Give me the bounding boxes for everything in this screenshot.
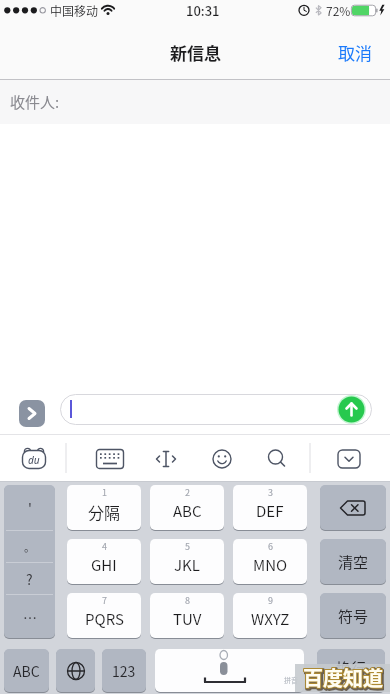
staticText: '	[28, 498, 32, 518]
staticText: 百度知道	[303, 663, 383, 691]
button[interactable]	[67, 485, 141, 530]
button[interactable]	[336, 447, 362, 471]
staticText: 123	[112, 661, 136, 681]
button[interactable]	[317, 649, 385, 692]
button[interactable]	[95, 446, 125, 472]
button[interactable]	[320, 539, 386, 584]
staticText: WXYZ	[251, 608, 290, 630]
staticText: 拼音	[284, 675, 298, 685]
button[interactable]	[233, 485, 307, 530]
staticText: 10:31	[186, 1, 220, 20]
staticText: 6	[268, 540, 273, 552]
staticText: 中国移动	[50, 2, 98, 19]
button[interactable]	[4, 485, 55, 638]
staticText: ABC	[173, 500, 202, 522]
staticText: 符号	[338, 605, 369, 627]
staticText: 收件人:	[10, 91, 60, 113]
button[interactable]	[320, 593, 386, 638]
button[interactable]	[150, 593, 224, 638]
button[interactable]	[0, 80, 390, 124]
button[interactable]	[152, 446, 180, 472]
button[interactable]	[337, 395, 366, 424]
staticText: 4	[102, 540, 107, 552]
button[interactable]	[67, 593, 141, 638]
staticText: 9	[268, 594, 273, 606]
staticText: 2	[185, 486, 190, 498]
staticText: 取消	[338, 40, 372, 65]
staticText: 百度知道	[304, 664, 384, 692]
staticText: DEF	[256, 500, 284, 522]
staticText: 。	[24, 539, 35, 555]
staticText: GHI	[91, 554, 117, 576]
button[interactable]	[19, 400, 45, 427]
button[interactable]	[263, 446, 291, 472]
staticText: ABC	[13, 661, 40, 681]
staticText: 新信息	[170, 40, 221, 65]
button[interactable]	[56, 649, 95, 692]
staticText: 分隔	[88, 500, 121, 523]
button[interactable]	[102, 649, 146, 692]
staticText: 5	[185, 540, 190, 552]
staticText: MNO	[253, 554, 288, 576]
staticText: du	[28, 453, 40, 467]
staticText: 换行	[336, 657, 367, 679]
staticText: 8	[185, 594, 190, 606]
button[interactable]	[155, 649, 304, 692]
button[interactable]	[150, 485, 224, 530]
staticText: 清空	[338, 551, 369, 573]
staticText: 7	[102, 594, 107, 606]
staticText: 3	[268, 486, 273, 498]
staticText: …	[23, 607, 37, 627]
button[interactable]: 取消	[330, 38, 380, 66]
button[interactable]	[320, 485, 386, 530]
staticText: JKL	[174, 554, 200, 576]
staticText: 1	[102, 486, 107, 498]
button[interactable]	[4, 649, 49, 692]
staticText: ?	[26, 569, 33, 589]
button[interactable]	[150, 539, 224, 584]
staticText: PQRS	[85, 608, 124, 630]
staticText: 72%	[326, 2, 351, 19]
button[interactable]	[208, 446, 236, 472]
button[interactable]	[60, 394, 372, 425]
button[interactable]	[233, 593, 307, 638]
staticText: 百度知道	[303, 663, 383, 691]
button[interactable]: du	[17, 446, 51, 472]
button[interactable]	[67, 539, 141, 584]
staticText: TUV	[173, 608, 202, 630]
button[interactable]	[233, 539, 307, 584]
